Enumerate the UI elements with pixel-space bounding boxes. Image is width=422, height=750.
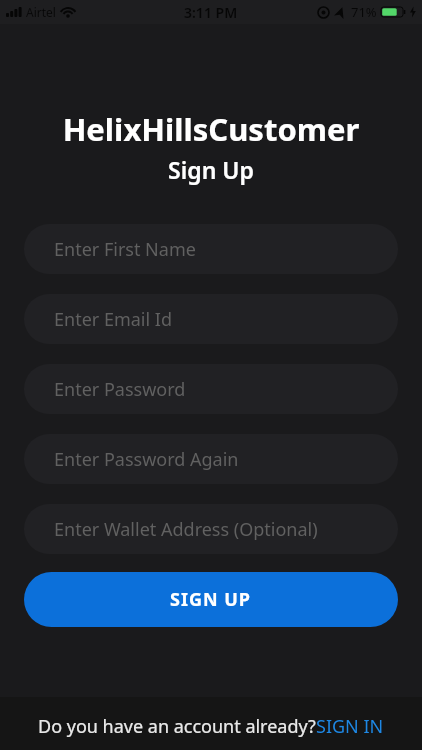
staticText: Airtel xyxy=(26,4,56,20)
button[interactable]: Enter Wallet Address (Optional) xyxy=(24,504,398,554)
button[interactable]: SIGN UP xyxy=(24,572,398,627)
staticText: 71% xyxy=(351,3,377,21)
button[interactable]: Enter Password xyxy=(24,364,398,414)
staticText: Do you have an account already? xyxy=(38,714,316,739)
staticText: HelixHillsCustomer xyxy=(0,108,422,150)
staticText: Enter First Name xyxy=(54,237,196,262)
staticText: 3:11 PM xyxy=(184,3,238,22)
button[interactable]: SIGN IN xyxy=(316,714,384,739)
staticText: SIGN IN xyxy=(316,714,384,739)
staticText: Enter Password xyxy=(54,377,186,402)
button[interactable]: Enter First Name xyxy=(24,224,398,274)
staticText: Enter Email Id xyxy=(54,307,172,332)
button[interactable]: Enter Password Again xyxy=(24,434,398,484)
staticText: Sign Up xyxy=(0,154,422,185)
staticText: Enter Password Again xyxy=(54,447,239,472)
button[interactable]: Enter Email Id xyxy=(24,294,398,344)
staticText: SIGN UP xyxy=(170,587,252,612)
staticText: Enter Wallet Address (Optional) xyxy=(54,517,318,542)
